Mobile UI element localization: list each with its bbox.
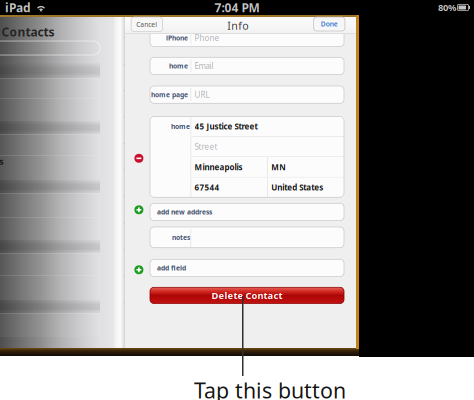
button[interactable]: add field: [150, 259, 344, 277]
staticText: Done: [321, 20, 338, 28]
button[interactable]: Delete Contact: [150, 287, 344, 303]
staticText: notes: [172, 233, 190, 242]
staticText: add field: [157, 263, 186, 272]
staticText: iPad: [5, 0, 31, 15]
staticText: URL: [195, 89, 210, 100]
staticText: Delete Contact: [211, 289, 282, 302]
staticText: 80%: [438, 1, 456, 14]
staticText: s: [0, 155, 4, 167]
staticText: Minneapolis: [195, 162, 243, 172]
staticText: Street: [195, 141, 218, 152]
staticText: Email: [195, 61, 214, 71]
staticText: Cancel: [136, 20, 157, 29]
staticText: Info: [227, 18, 248, 33]
staticText: home: [169, 61, 188, 70]
staticText: MN: [271, 162, 286, 172]
staticText: home: [171, 122, 190, 131]
staticText: 7:04 PM: [214, 0, 259, 15]
staticText: 67544: [195, 182, 220, 193]
staticText: home page: [151, 90, 188, 99]
staticText: add new address: [157, 207, 212, 216]
button[interactable]: add new address: [150, 203, 344, 221]
staticText: United States: [271, 182, 323, 193]
button[interactable]: Done: [314, 17, 345, 31]
staticText: Contacts: [1, 24, 54, 40]
staticText: iPhone: [166, 33, 188, 42]
staticText: 45 Justice Street: [195, 121, 258, 132]
staticText: Tap this button: [194, 376, 346, 400]
button[interactable]: Cancel: [131, 17, 162, 32]
staticText: Phone: [195, 33, 220, 43]
